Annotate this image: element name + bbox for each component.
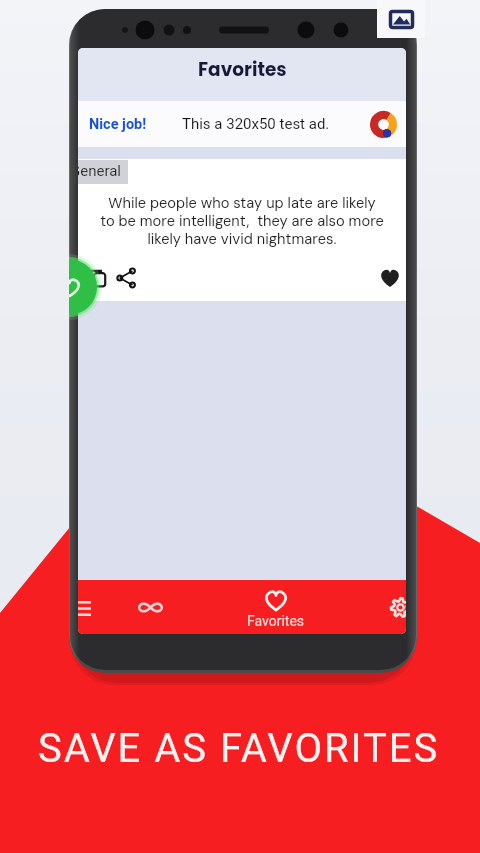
staticText: General (78, 162, 122, 180)
button[interactable]: Share (106, 258, 146, 298)
button[interactable]: Nice job! (78, 101, 406, 147)
button[interactable]: All facts (128, 580, 172, 634)
staticText: This a 320x50 test ad. (182, 115, 330, 133)
button[interactable]: General (78, 160, 128, 184)
staticText: Nice job! (89, 116, 147, 133)
staticText: Favorites (198, 57, 287, 83)
button[interactable]: Settings (382, 580, 406, 634)
button[interactable]: Copy (78, 258, 118, 298)
other: Image (377, 0, 425, 38)
button[interactable]: Favorite (370, 258, 406, 298)
staticText: SAVE AS FAVORITES (38, 725, 440, 772)
staticText: Favorites (247, 613, 305, 629)
staticText: While people who stay up late are likely… (78, 194, 406, 249)
button[interactable]: Menu (78, 581, 101, 634)
button[interactable]: Favorites (246, 583, 306, 634)
